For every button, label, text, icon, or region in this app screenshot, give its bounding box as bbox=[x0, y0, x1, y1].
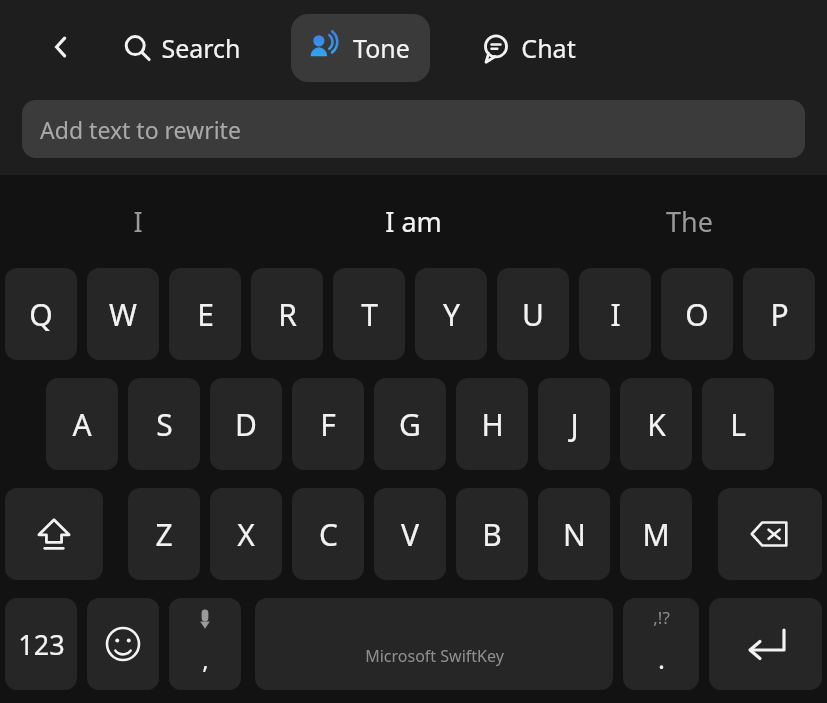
staticText: H bbox=[481, 404, 504, 445]
staticText: Tone bbox=[353, 31, 410, 65]
button[interactable]: K bbox=[620, 378, 692, 470]
button[interactable]: H bbox=[456, 378, 528, 470]
staticText: The bbox=[666, 203, 713, 240]
button[interactable]: J bbox=[538, 378, 610, 470]
button[interactable]: E bbox=[169, 268, 241, 360]
button[interactable]: Period bbox=[623, 598, 699, 690]
staticText: Add text to rewrite bbox=[40, 114, 241, 145]
button[interactable]: T bbox=[333, 268, 405, 360]
button[interactable]: Tone bbox=[307, 14, 410, 82]
staticText: C bbox=[319, 514, 338, 555]
staticText: O bbox=[685, 294, 709, 335]
button[interactable]: O bbox=[661, 268, 733, 360]
staticText: E bbox=[197, 294, 214, 335]
staticText: Chat bbox=[521, 31, 576, 65]
button[interactable]: Voice input bbox=[169, 598, 241, 690]
button[interactable]: D bbox=[210, 378, 282, 470]
staticText: B bbox=[482, 514, 502, 555]
button[interactable]: Z bbox=[128, 488, 200, 580]
staticText: D bbox=[235, 404, 257, 445]
staticText: J bbox=[570, 404, 579, 445]
button[interactable]: Q bbox=[5, 268, 77, 360]
staticText: M bbox=[642, 514, 670, 555]
button[interactable]: P bbox=[743, 268, 815, 360]
staticText: K bbox=[647, 404, 666, 445]
button[interactable]: Y bbox=[415, 268, 487, 360]
button[interactable]: Emoji bbox=[87, 598, 159, 690]
staticText: ,!? bbox=[653, 606, 670, 629]
button[interactable]: X bbox=[210, 488, 282, 580]
staticText: X bbox=[237, 514, 255, 555]
button[interactable]: Search bbox=[122, 16, 241, 80]
button[interactable]: U bbox=[497, 268, 569, 360]
button[interactable]: C bbox=[292, 488, 364, 580]
button[interactable]: A bbox=[46, 378, 118, 470]
button[interactable]: I bbox=[579, 268, 651, 360]
button[interactable]: R bbox=[251, 268, 323, 360]
staticText: F bbox=[320, 404, 336, 445]
staticText: I bbox=[133, 203, 143, 240]
staticText: I bbox=[610, 294, 621, 335]
staticText: I am bbox=[385, 203, 442, 240]
button[interactable]: F bbox=[292, 378, 364, 470]
staticText: P bbox=[770, 294, 789, 335]
button[interactable]: Backspace bbox=[718, 488, 822, 580]
staticText: 123 bbox=[18, 626, 65, 663]
staticText: U bbox=[522, 294, 544, 335]
staticText: L bbox=[730, 404, 746, 445]
button[interactable]: M bbox=[620, 488, 692, 580]
staticText: Z bbox=[155, 514, 173, 555]
staticText: W bbox=[109, 294, 137, 335]
button[interactable]: The bbox=[551, 175, 827, 268]
button[interactable]: W bbox=[87, 268, 159, 360]
staticText: A bbox=[72, 404, 92, 445]
button[interactable]: N bbox=[538, 488, 610, 580]
button[interactable]: B bbox=[456, 488, 528, 580]
button[interactable]: Enter bbox=[709, 598, 822, 690]
button[interactable]: S bbox=[128, 378, 200, 470]
button[interactable]: Numbers bbox=[5, 598, 77, 690]
button[interactable]: V bbox=[374, 488, 446, 580]
staticText: . bbox=[658, 641, 665, 676]
button[interactable]: Microsoft SwiftKey bbox=[255, 598, 613, 690]
staticText: , bbox=[202, 643, 209, 676]
staticText: Q bbox=[29, 294, 53, 335]
button[interactable]: I am bbox=[275, 175, 551, 268]
button[interactable]: L bbox=[702, 378, 774, 470]
button[interactable]: Back bbox=[36, 22, 86, 72]
staticText: R bbox=[278, 294, 297, 335]
button[interactable]: Add text to rewrite bbox=[22, 100, 805, 158]
staticText: Search bbox=[161, 31, 241, 65]
button[interactable]: Shift bbox=[5, 488, 103, 580]
staticText: G bbox=[399, 404, 421, 445]
staticText: T bbox=[361, 294, 378, 335]
staticText: Microsoft SwiftKey bbox=[365, 645, 504, 667]
button[interactable]: G bbox=[374, 378, 446, 470]
staticText: S bbox=[156, 404, 173, 445]
staticText: Y bbox=[443, 294, 460, 335]
staticText: N bbox=[563, 514, 586, 555]
button[interactable]: I bbox=[0, 175, 275, 268]
button[interactable]: Chat bbox=[480, 16, 576, 80]
staticText: V bbox=[401, 514, 419, 555]
